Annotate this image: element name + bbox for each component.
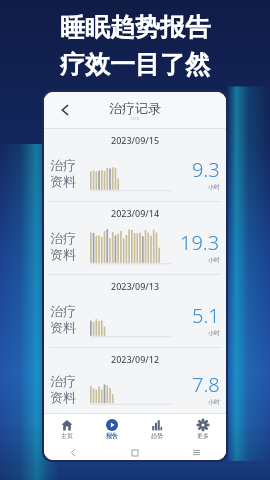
staticText: 小时 — [208, 329, 220, 337]
staticText: 治疗 — [50, 230, 76, 246]
staticText: 更多 — [197, 432, 209, 440]
button[interactable]: 更多 — [180, 414, 226, 444]
staticText: 资料 — [50, 319, 76, 335]
staticText: 治疗 — [50, 373, 76, 389]
staticText: 5.1 — [192, 302, 220, 329]
staticText: 治疗 — [50, 157, 76, 173]
button[interactable]: 趋势 — [134, 414, 180, 444]
staticText: 2023/09/13 — [111, 280, 160, 292]
staticText: 睡眠趋势报告 — [60, 12, 210, 43]
staticText: 2023/09/14 — [111, 207, 160, 219]
staticText: 小时 — [208, 398, 220, 406]
button[interactable]: 2023/09/13 — [44, 275, 226, 347]
staticText: 报告 — [106, 432, 118, 440]
button[interactable]: 主页 — [44, 414, 89, 444]
staticText: 2023/09/15 — [111, 134, 160, 146]
button[interactable]: 返回 — [52, 97, 78, 123]
staticText: 小时 — [208, 183, 220, 191]
staticText: 资料 — [50, 246, 76, 262]
staticText: 19.3 — [180, 229, 220, 256]
staticText: 主页 — [61, 432, 73, 440]
staticText: 趋势 — [151, 432, 163, 440]
staticText: 资料 — [50, 389, 76, 405]
staticText: 7.8 — [192, 371, 220, 398]
button[interactable]: 2023/09/12 — [44, 348, 226, 413]
staticText: 2023/09/12 — [111, 353, 160, 365]
staticText: 1.0.5 — [130, 116, 140, 121]
staticText: 资料 — [50, 173, 76, 189]
staticText: 治疗记录 — [109, 100, 161, 116]
staticText: 疗效一目了然 — [60, 49, 210, 80]
button[interactable]: 报告 — [89, 414, 134, 444]
button[interactable]: 2023/09/15 — [44, 129, 226, 201]
staticText: 9.3 — [192, 156, 220, 183]
staticText: 小时 — [208, 256, 220, 264]
staticText: 治疗 — [50, 303, 76, 319]
button[interactable]: 2023/09/14 — [44, 202, 226, 274]
